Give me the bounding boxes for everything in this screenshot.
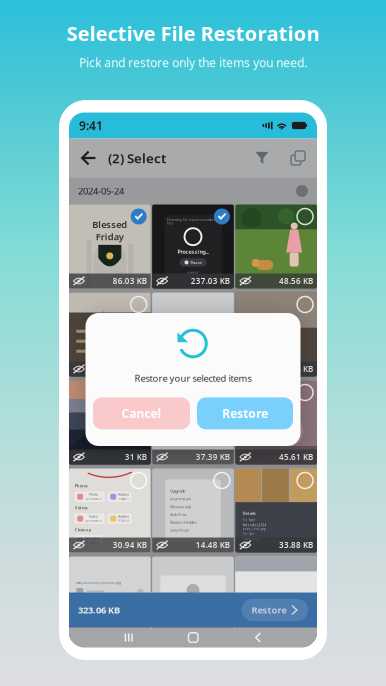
staticText: (2) Select xyxy=(108,149,166,167)
staticText: 2024-05-24 xyxy=(78,185,124,197)
button[interactable]: Cancel xyxy=(93,397,190,429)
staticText: 31 KB xyxy=(125,452,147,462)
staticText: Pause xyxy=(190,260,201,265)
staticText: to premium xyxy=(170,496,191,501)
button[interactable]: Filter xyxy=(251,143,273,173)
staticText: Remove ads xyxy=(170,504,191,509)
staticText: Screenshot xyxy=(85,537,100,540)
staticText: Videos xyxy=(119,519,129,522)
staticText: Screenshot_20240524_1005.jpg xyxy=(243,523,267,531)
button[interactable]: Select all xyxy=(287,143,309,173)
staticText: Photo xyxy=(89,493,98,496)
staticText: Images xyxy=(119,497,128,500)
staticText: 33.88 KB xyxy=(279,540,313,550)
staticText: image/jpeg xyxy=(243,537,259,541)
staticText: IMG_20240524_09430952.jpg xyxy=(76,581,121,584)
staticText: Upgrade xyxy=(170,488,185,494)
staticText: 14.48 KB xyxy=(196,540,230,550)
staticText: Hidden xyxy=(118,515,129,518)
staticText: 237.03 KB xyxy=(191,276,230,286)
staticText: Hidden xyxy=(118,493,129,496)
staticText: File Type xyxy=(243,532,255,535)
staticText: Processing file requires a number of fil… xyxy=(167,218,219,225)
staticText: 51.3 KB xyxy=(284,364,313,374)
staticText: Restore your selected items xyxy=(134,372,251,384)
staticText: Pick and restore only the items you need… xyxy=(79,55,307,70)
staticText: Easy to use xyxy=(170,527,189,533)
staticText: Processing... xyxy=(177,248,208,255)
staticText: Optimisation xyxy=(85,497,102,500)
staticText: Restore Hidden xyxy=(170,520,196,525)
staticText: Ads Free xyxy=(170,512,186,517)
staticText: Videos xyxy=(75,505,88,510)
staticText: 323.06 KB xyxy=(78,604,120,616)
staticText: Friday xyxy=(96,230,124,243)
button[interactable]: Back xyxy=(77,143,99,173)
button[interactable]: Restore xyxy=(241,599,308,621)
staticText: 9:41 xyxy=(79,117,103,133)
staticText: cancel xyxy=(187,270,198,275)
staticText: Restore xyxy=(222,405,268,421)
staticText: 30.94 KB xyxy=(113,540,147,550)
staticText: showstore xyxy=(259,593,293,602)
staticText: Video xyxy=(89,515,98,518)
staticText: 86.03 KB xyxy=(113,276,147,286)
staticText: File Name xyxy=(243,518,256,522)
staticText: Cleanup xyxy=(75,527,92,532)
staticText: Optimisation xyxy=(85,519,102,522)
staticText: 48.56 KB xyxy=(279,276,313,286)
staticText: Selective File Restoration xyxy=(66,20,319,47)
staticText: Blessed xyxy=(92,218,127,230)
staticText: Details xyxy=(243,511,256,516)
staticText: 37.39 KB xyxy=(196,452,230,462)
staticText: Photos xyxy=(75,483,88,488)
staticText: Restore xyxy=(251,604,286,616)
staticText: 45.61 KB xyxy=(279,452,313,462)
staticText: Cancel xyxy=(121,405,161,421)
button[interactable]: Restore xyxy=(197,397,293,429)
